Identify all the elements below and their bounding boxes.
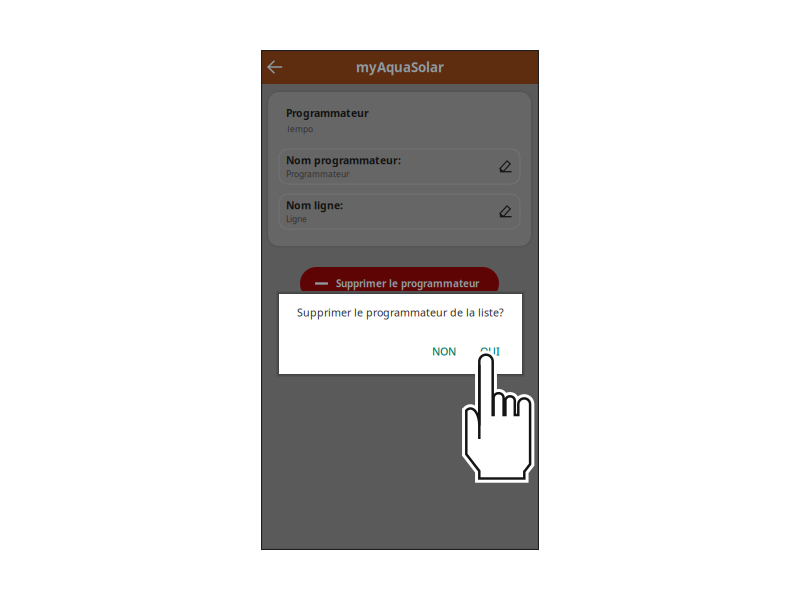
staticText: Tempo — [286, 123, 313, 135]
staticText: myAquaSolar — [356, 58, 444, 76]
staticText: Nom programmateur: — [286, 153, 401, 167]
button[interactable]: OUI — [470, 338, 510, 364]
staticText: NON — [432, 344, 456, 358]
staticText: Nom ligne: — [286, 198, 343, 212]
staticText: OUI — [480, 344, 500, 358]
button[interactable]: Nom ligne: — [279, 194, 520, 229]
button[interactable]: Supprimer le programmateur — [300, 267, 499, 300]
staticText: Ligne — [286, 213, 307, 225]
button[interactable]: Back — [261, 50, 293, 84]
staticText: Programmateur — [286, 106, 369, 120]
button[interactable]: Nom programmateur: — [279, 149, 520, 184]
staticText: Programmateur — [286, 168, 349, 180]
staticText: Supprimer le programmateur — [336, 277, 479, 290]
button[interactable]: NON — [422, 338, 466, 364]
staticText: Supprimer le programmateur de la liste? — [297, 305, 504, 319]
